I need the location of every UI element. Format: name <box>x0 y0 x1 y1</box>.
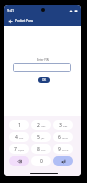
staticText: OK <box>42 78 47 82</box>
staticText: 2 <box>37 122 40 129</box>
staticText: 6 <box>58 134 61 141</box>
button[interactable]: 2 <box>31 120 51 130</box>
staticText: 4 <box>15 134 18 141</box>
button[interactable]: 1 <box>9 120 29 130</box>
button[interactable]: 3 <box>53 120 73 130</box>
button[interactable]: 8 <box>31 144 51 154</box>
staticText: MNO <box>62 136 68 139</box>
staticText: 8 <box>37 146 40 153</box>
staticText: JKL <box>41 136 45 139</box>
staticText: WXYZ <box>62 148 69 151</box>
staticText: GHI <box>19 136 24 139</box>
staticText: Pocket Pass <box>15 19 33 23</box>
button[interactable]: 4 <box>9 132 29 142</box>
button[interactable]: 0 <box>31 156 51 166</box>
staticText: 9:41 <box>7 8 15 13</box>
staticText: Enter PIN <box>37 58 49 62</box>
button[interactable]: 6 <box>53 132 73 142</box>
button[interactable] <box>13 63 71 72</box>
staticText: PQRS <box>18 148 25 151</box>
staticText: DEF <box>63 124 68 127</box>
button[interactable]: Backspace <box>9 156 29 166</box>
button[interactable]: Enter <box>53 156 73 166</box>
staticText: 7 <box>14 146 17 153</box>
staticText: 9 <box>58 146 61 153</box>
staticText: 5 <box>37 134 40 141</box>
button[interactable]: 7 <box>9 144 29 154</box>
staticText: ABC <box>41 124 46 127</box>
button[interactable]: 9 <box>53 144 73 154</box>
button[interactable]: OK <box>38 77 50 83</box>
button[interactable]: Back <box>6 17 14 25</box>
staticText: TUV <box>41 148 46 151</box>
staticText: 0 <box>40 158 43 165</box>
button[interactable]: 5 <box>31 132 51 142</box>
staticText: 3 <box>59 122 62 129</box>
staticText: 1 <box>18 122 21 129</box>
